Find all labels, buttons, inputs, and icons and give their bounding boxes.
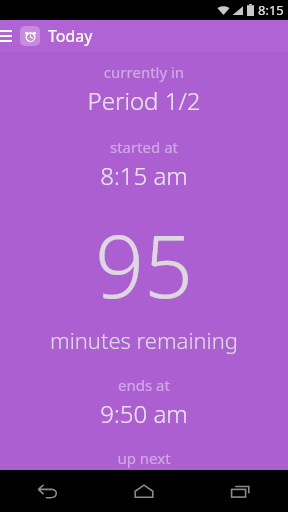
button[interactable]: Back bbox=[0, 470, 96, 512]
staticText: 8:15 am bbox=[0, 159, 288, 192]
staticText: currently in bbox=[0, 62, 288, 82]
staticText: up next bbox=[0, 448, 288, 468]
staticText: 8:15 bbox=[258, 1, 284, 19]
staticText: 9:50 am bbox=[0, 397, 288, 430]
staticText: ends at bbox=[0, 375, 288, 395]
button[interactable]: currently in bbox=[0, 52, 288, 470]
staticText: started at bbox=[0, 137, 288, 157]
staticText: Period 1/2 bbox=[0, 84, 288, 117]
button[interactable]: Recent apps bbox=[192, 470, 288, 512]
button[interactable]: Home bbox=[96, 470, 192, 512]
staticText: Today bbox=[48, 25, 93, 47]
staticText: 95 bbox=[0, 206, 288, 323]
button[interactable]: App icon bbox=[20, 26, 40, 46]
staticText: minutes remaining bbox=[0, 325, 288, 355]
button[interactable]: Open navigation drawer bbox=[0, 27, 14, 45]
